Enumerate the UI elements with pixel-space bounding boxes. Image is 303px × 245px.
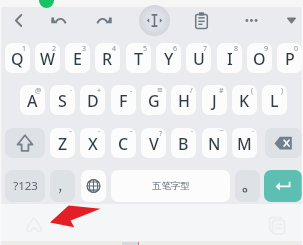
button[interactable]: K bbox=[232, 85, 257, 115]
button[interactable]: Hide keyboard bbox=[277, 6, 303, 35]
staticText: M bbox=[237, 133, 252, 155]
staticText: 4 bbox=[112, 44, 117, 54]
button[interactable]: I bbox=[217, 43, 242, 73]
button[interactable]: C bbox=[111, 128, 136, 158]
staticText: D bbox=[87, 90, 99, 112]
button[interactable]: L bbox=[262, 85, 287, 115]
staticText: F bbox=[119, 90, 128, 112]
button[interactable]: A bbox=[20, 85, 45, 115]
staticText: ? bbox=[159, 129, 163, 139]
button[interactable]: Redo bbox=[90, 6, 119, 35]
staticText: B bbox=[178, 133, 189, 155]
staticText: ˇ bbox=[69, 129, 72, 139]
staticText: R bbox=[102, 48, 113, 70]
staticText: J bbox=[212, 90, 217, 112]
button[interactable]: U bbox=[186, 43, 211, 73]
button[interactable]: O bbox=[247, 43, 272, 73]
button[interactable]: W bbox=[35, 43, 60, 73]
button[interactable]: 五笔字型 bbox=[111, 170, 230, 202]
staticText: N bbox=[208, 133, 221, 155]
staticText: + bbox=[97, 86, 102, 96]
button[interactable]: ?123 bbox=[5, 170, 45, 202]
staticText: Q bbox=[11, 48, 24, 70]
staticText: G bbox=[148, 90, 160, 112]
staticText: ¨ bbox=[97, 129, 102, 139]
staticText: 6 bbox=[173, 44, 178, 54]
button[interactable]: Shift bbox=[5, 128, 45, 158]
button[interactable]: E bbox=[65, 43, 90, 73]
staticText: X bbox=[88, 133, 98, 155]
staticText: 8 bbox=[234, 44, 239, 54]
button[interactable]: P bbox=[277, 43, 302, 73]
staticText: U bbox=[193, 48, 205, 70]
button[interactable]: Clipboard bbox=[187, 6, 216, 35]
staticText: / bbox=[190, 86, 193, 96]
staticText: W bbox=[40, 48, 56, 70]
button[interactable]: Back bbox=[4, 6, 33, 35]
button[interactable]: G bbox=[141, 85, 166, 115]
staticText: ¯ bbox=[220, 129, 224, 139]
staticText: 0 bbox=[294, 44, 299, 54]
staticText: C bbox=[118, 133, 129, 155]
staticText: V bbox=[149, 133, 159, 155]
button[interactable]: V bbox=[141, 128, 166, 158]
staticText: ˋ bbox=[191, 129, 193, 139]
staticText: ( bbox=[251, 86, 254, 96]
staticText: Z bbox=[58, 133, 68, 155]
button[interactable]: More options bbox=[237, 6, 266, 35]
button[interactable]: B bbox=[171, 128, 196, 158]
staticText: H bbox=[178, 90, 190, 112]
staticText: S bbox=[58, 90, 67, 112]
button[interactable]: M bbox=[232, 128, 257, 158]
button[interactable]: D bbox=[80, 85, 105, 115]
button[interactable]: Q bbox=[5, 43, 30, 73]
staticText: - bbox=[130, 86, 133, 96]
button[interactable]: Comma bbox=[50, 170, 75, 202]
staticText: ˉ bbox=[130, 129, 133, 139]
staticText: O bbox=[253, 48, 266, 70]
button[interactable]: Cursor control bbox=[139, 5, 170, 36]
button[interactable]: H bbox=[171, 85, 196, 115]
button[interactable]: Z bbox=[50, 128, 75, 158]
button[interactable]: Backspace bbox=[265, 128, 302, 158]
button[interactable]: J bbox=[202, 85, 227, 115]
staticText: K bbox=[239, 90, 250, 112]
staticText: 7 bbox=[203, 44, 208, 54]
staticText: T bbox=[134, 48, 143, 70]
staticText: 五笔字型 bbox=[152, 180, 190, 192]
staticText: ) bbox=[281, 86, 284, 96]
button[interactable]: Undo bbox=[44, 6, 73, 35]
staticText: # bbox=[219, 86, 224, 96]
button[interactable]: Enter bbox=[264, 170, 302, 202]
staticText: @ bbox=[35, 86, 42, 96]
button[interactable]: R bbox=[95, 43, 120, 73]
button[interactable]: F bbox=[111, 85, 136, 115]
button[interactable]: X bbox=[80, 128, 105, 158]
staticText: · bbox=[70, 86, 72, 96]
button[interactable]: Y bbox=[156, 43, 181, 73]
staticText: 2 bbox=[52, 44, 57, 54]
button[interactable]: T bbox=[126, 43, 151, 73]
button[interactable]: Switch language bbox=[81, 170, 106, 202]
button[interactable]: Period bbox=[235, 170, 260, 202]
staticText: L bbox=[270, 90, 279, 112]
staticText: 5 bbox=[143, 44, 148, 54]
staticText: 9 bbox=[264, 44, 269, 54]
staticText: 3 bbox=[82, 44, 87, 54]
staticText: E bbox=[73, 48, 82, 70]
button[interactable]: N bbox=[202, 128, 227, 158]
staticText: ?123 bbox=[13, 178, 38, 194]
staticText: I bbox=[227, 48, 233, 70]
staticText: ˊ bbox=[252, 129, 254, 139]
staticText: P bbox=[285, 48, 295, 70]
button[interactable]: S bbox=[50, 85, 75, 115]
staticText: A bbox=[27, 90, 38, 112]
staticText: Y bbox=[164, 48, 174, 70]
staticText: 1 bbox=[22, 44, 27, 54]
staticText: ≡ bbox=[157, 86, 163, 94]
